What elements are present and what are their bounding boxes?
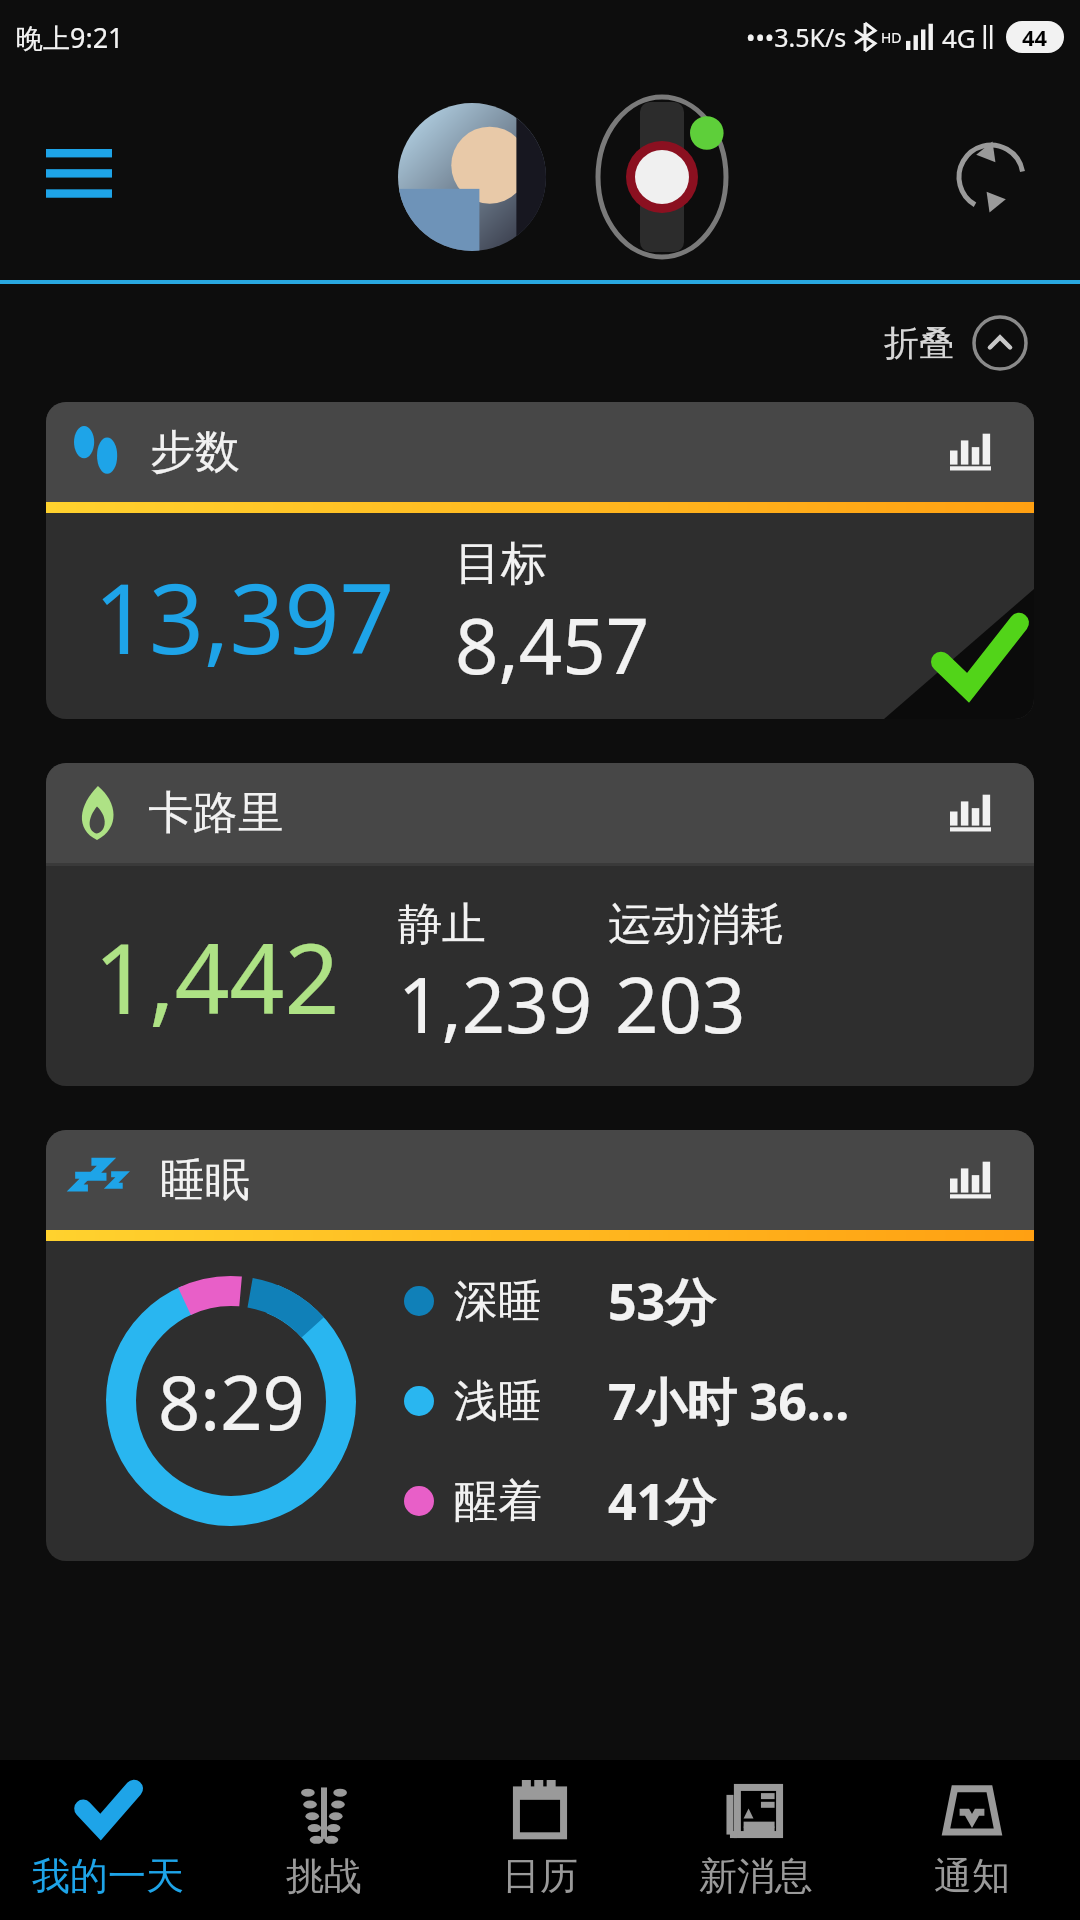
staticText: 挑战 (286, 1852, 362, 1900)
staticText: 通知 (934, 1852, 1010, 1900)
button[interactable]: 挑战 (216, 1760, 432, 1920)
staticText: 晚上9:21 (16, 19, 124, 56)
staticText: 41分 (608, 1467, 716, 1535)
staticText: 深睡 (454, 1274, 542, 1329)
button[interactable]: 步数 (46, 402, 1034, 719)
button[interactable]: Sync (954, 140, 1028, 214)
button[interactable]: 我的一天 (0, 1760, 216, 1920)
staticText: 浅睡 (454, 1374, 542, 1429)
staticText: 4G (942, 20, 976, 55)
staticText: 日历 (502, 1852, 578, 1900)
staticText: 44 (1022, 22, 1048, 52)
staticText: 1,239 (398, 952, 593, 1056)
staticText: 7小时 36… (608, 1367, 850, 1435)
staticText: 新消息 (699, 1852, 813, 1900)
staticText: 13,397 (94, 551, 395, 682)
button[interactable]: Device (582, 97, 742, 257)
button[interactable]: Chart (950, 792, 1000, 834)
button[interactable]: 卡路里 (46, 763, 1034, 1086)
button[interactable]: Chart (950, 1159, 1000, 1201)
staticText: 睡眠 (160, 1152, 250, 1209)
staticText: 8,457 (455, 593, 650, 697)
button[interactable]: Menu (46, 149, 112, 205)
staticText: 1,442 (94, 911, 340, 1042)
staticText: •••3.5K/s (746, 20, 847, 54)
button[interactable]: Chart (950, 431, 1000, 473)
staticText: 8:29 (158, 1351, 305, 1452)
staticText: 目标 (455, 535, 547, 593)
staticText: 运动消耗 (608, 897, 784, 952)
button[interactable]: 新消息 (648, 1760, 864, 1920)
button[interactable]: 折叠 (876, 307, 1036, 379)
button[interactable]: 日历 (432, 1760, 648, 1920)
button[interactable] (398, 103, 546, 251)
staticText: 卡路里 (148, 785, 283, 842)
staticText: 53分 (608, 1267, 716, 1335)
button[interactable]: 睡眠 (46, 1130, 1034, 1561)
staticText: HD (881, 28, 902, 47)
staticText: 步数 (150, 424, 240, 481)
staticText: 醒着 (454, 1474, 542, 1529)
staticText: 我的一天 (32, 1852, 184, 1900)
staticText: 折叠 (884, 321, 954, 365)
staticText: 203 (615, 952, 746, 1056)
button[interactable]: 通知 (864, 1760, 1080, 1920)
staticText: 静止 (398, 897, 486, 952)
